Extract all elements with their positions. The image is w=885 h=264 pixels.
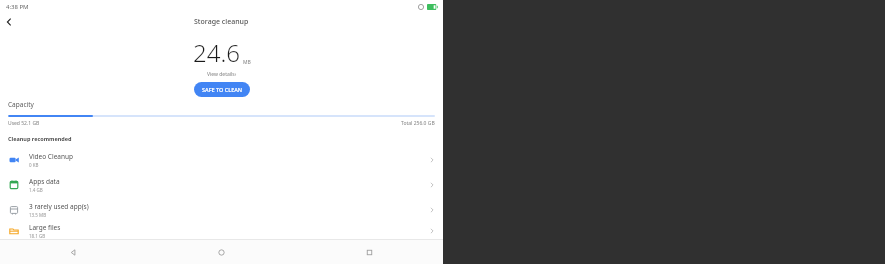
staticText: Capacity (8, 100, 34, 109)
staticText: Video Cleanup (29, 152, 73, 161)
staticText: 3 rarely used app(s) (29, 202, 89, 211)
button[interactable]: Apps data (0, 172, 443, 197)
staticText: Cleanup recommended (8, 135, 72, 142)
button[interactable]: Video Cleanup (0, 147, 443, 172)
button[interactable]: Large files (0, 222, 443, 239)
button[interactable]: 3 rarely used app(s) (0, 197, 443, 222)
staticText: Apps data (29, 177, 60, 186)
staticText: 0 KB (29, 162, 39, 168)
staticText: 13.5 MB (29, 212, 47, 218)
staticText: SAFE TO CLEAN (202, 86, 243, 93)
staticText: 4:38 PM (6, 3, 29, 11)
staticText: Large files (29, 223, 61, 232)
button[interactable]: View details› (203, 70, 241, 79)
staticText: 18.1 GB (29, 233, 46, 239)
button[interactable]: SAFE TO CLEAN (194, 82, 250, 97)
button[interactable]: Back (0, 13, 18, 31)
staticText: View details› (207, 71, 237, 78)
button[interactable]: Home (147, 240, 295, 264)
staticText: 1.4 GB (29, 187, 43, 193)
staticText: Storage cleanup (194, 17, 249, 27)
staticText: Used 52.1 GB (8, 120, 40, 127)
staticText: MB (243, 59, 251, 66)
staticText: Total 256.0 GB (401, 120, 435, 127)
staticText: 24.6 (193, 36, 240, 69)
button[interactable]: Back (0, 240, 147, 264)
button[interactable]: Recents (295, 240, 443, 264)
